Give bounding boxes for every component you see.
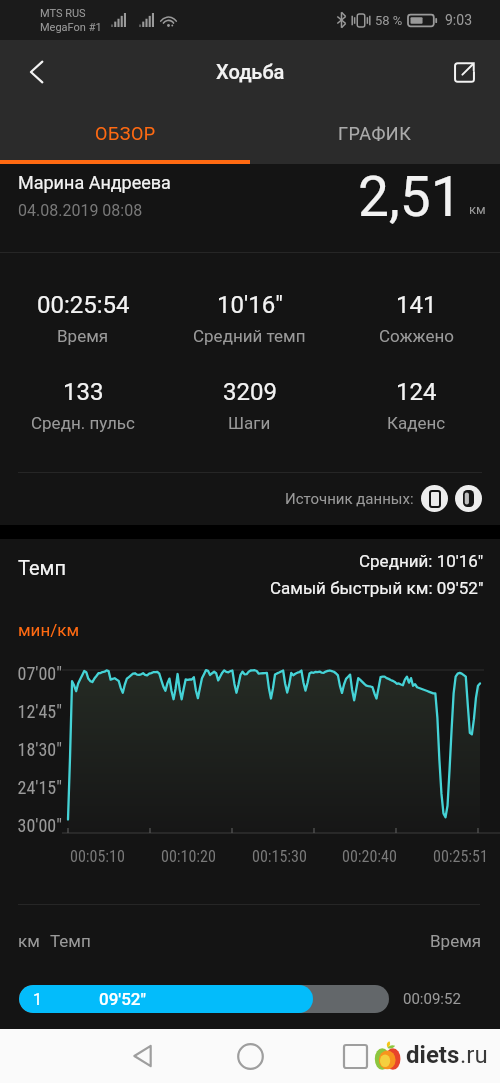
staticText: Средний: 10'16" <box>359 551 484 571</box>
staticText: ОБЗОР <box>95 123 156 144</box>
staticText: .ru <box>460 1041 488 1069</box>
staticText: diets <box>406 1041 460 1069</box>
staticText: км <box>469 202 486 217</box>
staticText: 00:05:10 <box>70 847 125 866</box>
staticText: Средний темп <box>193 326 306 346</box>
staticText: 07'00" <box>12 663 62 684</box>
staticText: Средн. пульс <box>31 413 135 433</box>
staticText: Шаги <box>228 413 271 433</box>
button[interactable]: 1 <box>19 985 484 1013</box>
staticText: 9:03 <box>445 12 472 28</box>
button[interactable]: Share <box>441 49 487 95</box>
staticText: Время <box>430 931 482 951</box>
staticText: 00:20:40 <box>342 847 397 866</box>
staticText: 00:10:20 <box>161 847 216 866</box>
staticText: 3209 <box>223 378 277 406</box>
button[interactable]: Home <box>225 1031 275 1081</box>
button[interactable]: ОБЗОР <box>0 103 250 164</box>
staticText: 00:09:52 <box>403 990 461 1008</box>
staticText: Марина Андреева <box>18 172 171 193</box>
button[interactable]: Back <box>118 1031 168 1081</box>
staticText: 00:15:30 <box>252 847 307 866</box>
button[interactable]: Watch data source <box>455 485 482 512</box>
staticText: 00:25:51 <box>433 847 488 866</box>
staticText: 10'16" <box>217 291 283 319</box>
staticText: 24'15" <box>12 777 62 798</box>
staticText: 09'52" <box>99 989 147 1009</box>
staticText: 30'00" <box>12 815 62 836</box>
staticText: Время <box>57 326 109 346</box>
staticText: Сожжено <box>379 326 454 346</box>
staticText: 00:25:54 <box>37 291 130 319</box>
button[interactable]: Recents <box>330 1031 380 1081</box>
staticText: 18'30" <box>12 739 62 760</box>
staticText: 12'45" <box>12 701 62 722</box>
staticText: Каденс <box>387 413 446 433</box>
staticText: MTS RUS <box>40 7 86 20</box>
staticText: 141 <box>396 291 437 319</box>
staticText: Темп <box>18 556 270 579</box>
staticText: ГРАФИК <box>338 123 412 144</box>
staticText: км <box>18 931 40 951</box>
staticText: MegaFon #1 <box>40 21 102 34</box>
button[interactable]: ГРАФИК <box>250 103 500 164</box>
button[interactable]: Phone data source <box>421 485 448 512</box>
button[interactable]: Back <box>13 49 59 95</box>
staticText: 2,51 <box>358 165 462 229</box>
staticText: Источник данных: <box>285 490 414 508</box>
staticText: 124 <box>396 378 437 406</box>
staticText: 1 <box>33 990 42 1009</box>
staticText: Ходьба <box>216 60 285 83</box>
staticText: 04.08.2019 08:08 <box>18 201 143 220</box>
staticText: 58 % <box>375 13 403 28</box>
staticText: Самый быстрый км: 09'52" <box>270 578 484 598</box>
staticText: Темп <box>50 931 430 951</box>
staticText: 133 <box>63 378 104 406</box>
staticText: мин/км <box>18 620 80 640</box>
